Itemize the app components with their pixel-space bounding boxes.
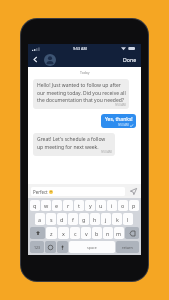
staticText: Hello! Just wanted to follow up after ou… [37, 82, 126, 103]
staticText: h [93, 216, 97, 223]
button[interactable]: y [85, 200, 95, 211]
staticText: j [105, 216, 107, 223]
button[interactable]: d [57, 213, 67, 225]
staticText: x [62, 230, 65, 237]
staticText: i [111, 202, 113, 209]
button[interactable]: q [30, 200, 40, 211]
button[interactable]: n [103, 227, 113, 239]
button[interactable]: v [81, 227, 91, 239]
button[interactable]: l [123, 213, 133, 225]
staticText: c [74, 230, 77, 237]
staticText: q [33, 202, 37, 209]
button[interactable]: Great! Let's schedule a follow up meetin… [33, 133, 115, 156]
button[interactable]: f [68, 213, 78, 225]
button[interactable]: a [35, 213, 45, 225]
staticText: s [50, 216, 53, 223]
staticText: l [127, 216, 129, 223]
staticText: a [38, 216, 42, 223]
button[interactable]: b [92, 227, 102, 239]
staticText: f [72, 216, 74, 223]
button[interactable]: o [118, 200, 128, 211]
staticText: k [116, 216, 119, 223]
button[interactable]: space [69, 241, 115, 253]
button[interactable]: k [112, 213, 122, 225]
staticText: b [95, 230, 99, 237]
staticText: Great! Let's schedule a follow up meetin… [37, 136, 112, 150]
staticText: Done [123, 56, 137, 63]
staticText: p [132, 202, 136, 209]
staticText: t [78, 202, 80, 209]
button[interactable]: j [101, 213, 111, 225]
button[interactable]: z [46, 227, 57, 239]
button[interactable]: g [79, 213, 89, 225]
staticText: g [82, 216, 86, 223]
button[interactable]: t [74, 200, 84, 211]
button[interactable]: x [58, 227, 69, 239]
button[interactable]: u [96, 200, 106, 211]
staticText: 9:53 AM [101, 150, 112, 154]
staticText: space [87, 245, 97, 250]
button[interactable]: Send [128, 186, 138, 196]
staticText: y [89, 202, 92, 209]
button[interactable]: i [107, 200, 117, 211]
button[interactable]: Back [30, 54, 41, 65]
staticText: 9:53 AM [73, 46, 87, 51]
button[interactable]: return [116, 241, 139, 253]
button[interactable]: c [70, 227, 80, 239]
button[interactable]: Backspace [125, 227, 139, 239]
staticText: e [55, 202, 59, 209]
button[interactable]: m [114, 227, 124, 239]
button[interactable]: r [63, 200, 73, 211]
button[interactable]: h [90, 213, 100, 225]
button[interactable]: Contact avatar [44, 54, 56, 66]
button[interactable]: 123 [30, 241, 44, 253]
staticText: Yes, thanks! [105, 116, 133, 123]
button[interactable]: Yes, thanks! [101, 114, 136, 128]
staticText: 123 [34, 245, 41, 250]
staticText: r [67, 202, 70, 209]
button[interactable]: Done [121, 54, 139, 65]
staticText: 9:53 AM [115, 103, 126, 107]
button[interactable]: Dictation [57, 241, 68, 253]
staticText: o [121, 202, 125, 209]
button[interactable]: Perfect [31, 187, 125, 196]
button[interactable]: s [46, 213, 56, 225]
button[interactable]: e [52, 200, 62, 211]
staticText: z [50, 230, 53, 237]
staticText: n [106, 230, 110, 237]
staticText: 9:53 AM [118, 123, 129, 127]
button[interactable]: Shift [30, 227, 45, 239]
button[interactable]: Emoji [45, 241, 56, 253]
staticText: Today [80, 70, 90, 75]
button[interactable]: Hello! Just wanted to follow up after ou… [33, 79, 129, 109]
staticText: return [122, 245, 133, 250]
staticText: w [44, 202, 49, 209]
staticText: d [60, 216, 64, 223]
staticText: v [85, 230, 88, 237]
staticText: Perfect [33, 189, 48, 195]
button[interactable]: p [129, 200, 139, 211]
button[interactable]: w [41, 200, 51, 211]
staticText: m [116, 230, 122, 237]
staticText: u [99, 202, 103, 209]
